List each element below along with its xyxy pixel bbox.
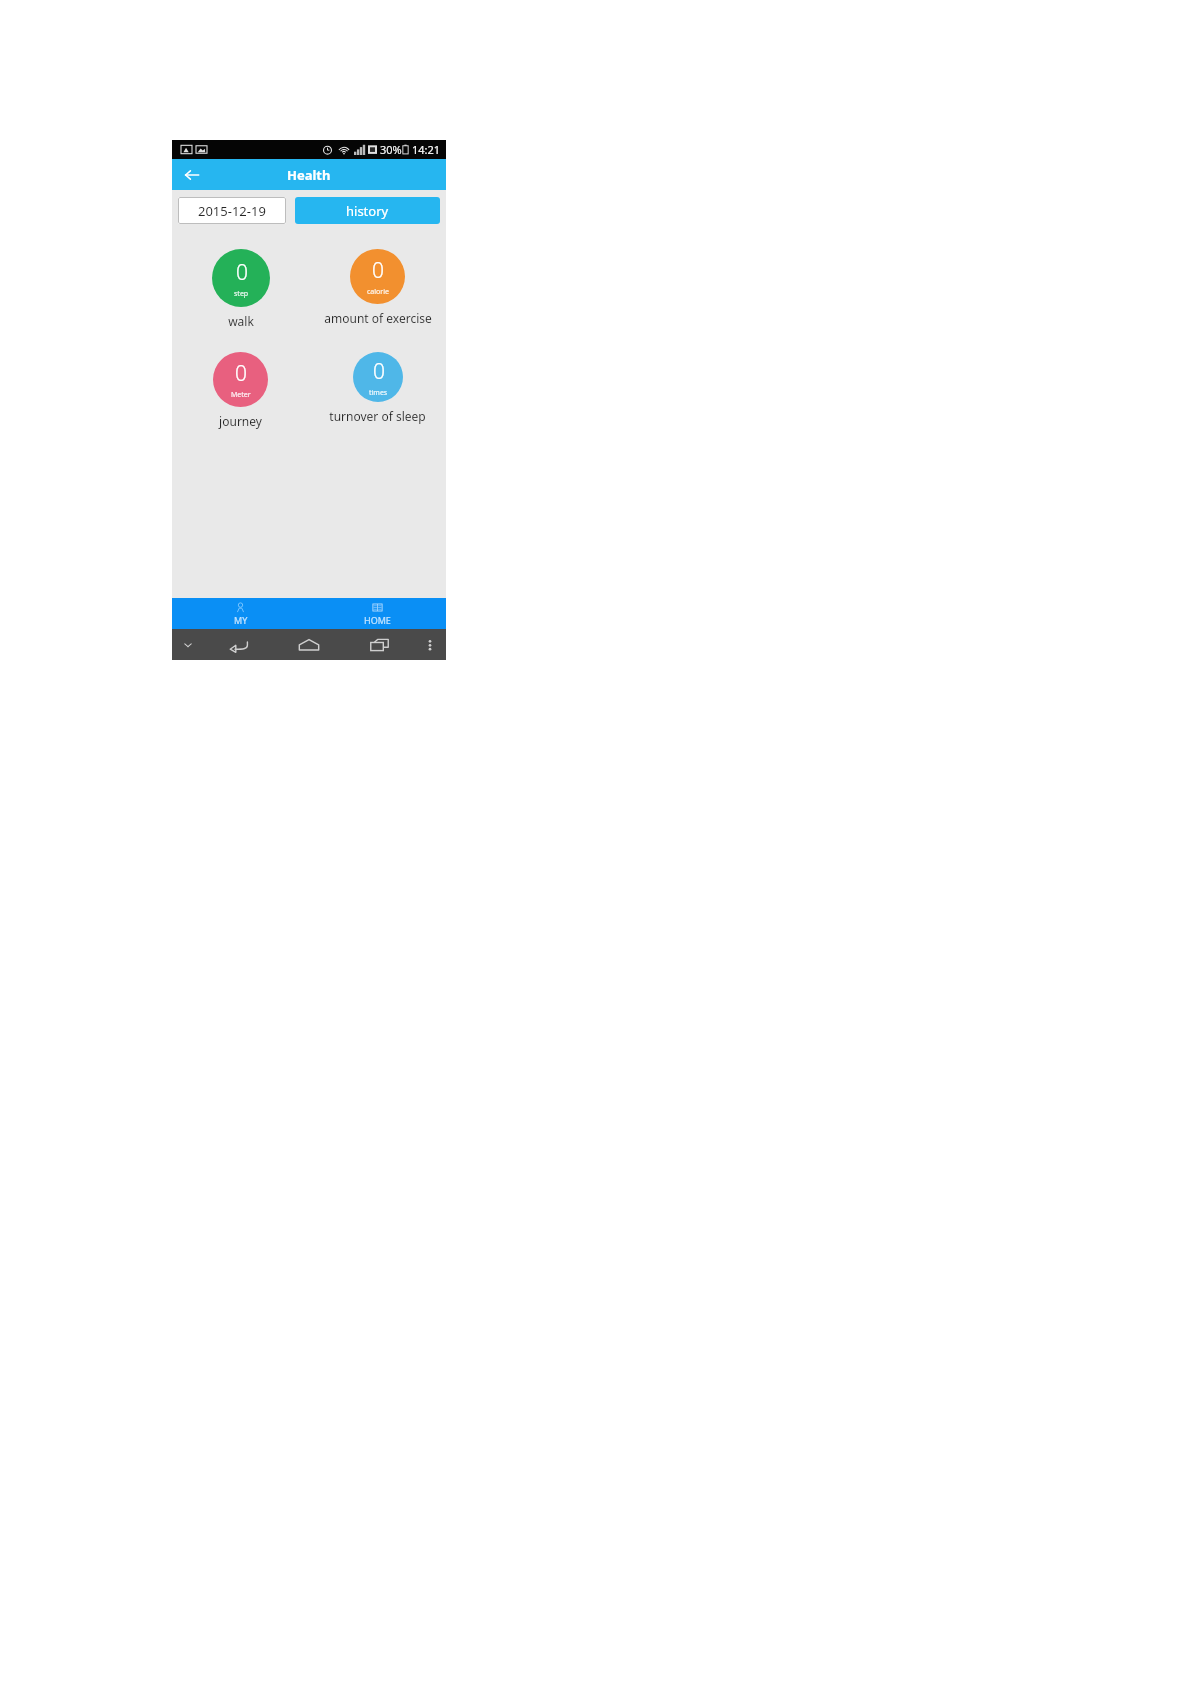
staticText: 30% <box>380 142 402 157</box>
staticText: 0 <box>373 357 385 386</box>
staticText: 14:21 <box>412 142 441 157</box>
staticText: history <box>346 202 389 220</box>
staticText: 0 <box>372 256 384 285</box>
button[interactable]: MY <box>172 598 309 629</box>
staticText: Meter <box>231 390 251 400</box>
button[interactable]: 0 <box>172 352 309 429</box>
button[interactable]: Recent apps <box>344 629 414 660</box>
staticText: step <box>234 289 249 299</box>
button[interactable]: 0 <box>309 249 446 326</box>
button[interactable]: More options <box>414 629 446 660</box>
staticText: amount of exercise <box>324 310 432 326</box>
button[interactable]: Back <box>179 162 205 188</box>
button[interactable]: 2015-12-19 <box>178 197 286 224</box>
staticText: walk <box>228 313 254 329</box>
button[interactable]: Home <box>274 629 344 660</box>
button[interactable]: history <box>295 197 440 224</box>
staticText: calorie <box>367 287 389 297</box>
button[interactable]: Back <box>204 629 274 660</box>
staticText: HOME <box>364 614 391 626</box>
button[interactable]: HOME <box>309 598 446 629</box>
staticText: journey <box>219 413 262 429</box>
staticText: MY <box>234 614 248 626</box>
button[interactable]: 0 <box>309 352 446 424</box>
staticText: 0 <box>236 258 248 287</box>
staticText: Health <box>287 166 331 184</box>
staticText: times <box>369 388 388 398</box>
staticText: turnover of sleep <box>329 408 426 424</box>
button[interactable]: Hide <box>172 629 204 660</box>
staticText: 0 <box>235 359 247 388</box>
staticText: 2015-12-19 <box>198 202 266 220</box>
button[interactable]: 0 <box>172 249 309 329</box>
